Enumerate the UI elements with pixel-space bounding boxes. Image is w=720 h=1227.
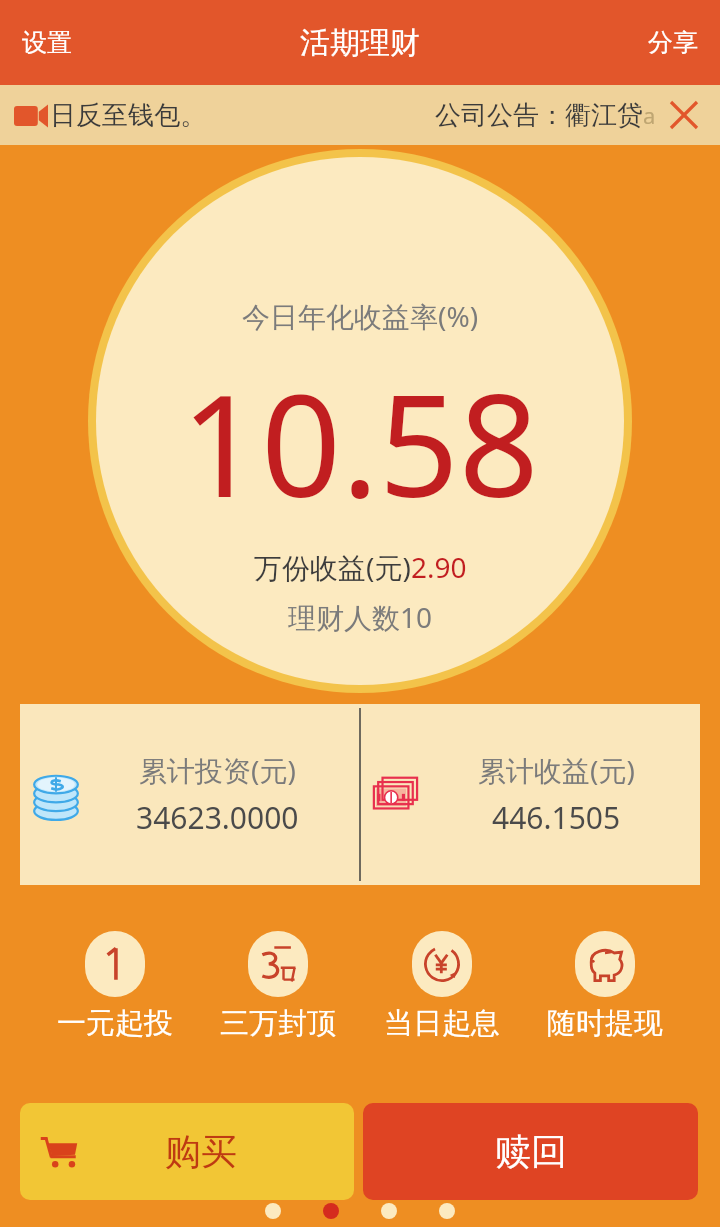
staticText: 累计收益(元) [478, 751, 635, 789]
button[interactable]: 购买 [20, 1103, 354, 1200]
staticText: 分享 [648, 27, 698, 58]
staticText: 公司公告：衢江贷 [435, 99, 643, 132]
staticText: 赎回 [495, 1129, 567, 1174]
button[interactable]: 累计投资(元) [20, 704, 359, 885]
button[interactable]: 当日起息 [380, 931, 504, 1042]
staticText: 理财人数10 [288, 598, 433, 636]
staticText: 2.90 [411, 548, 467, 586]
staticText: 活期理财 [300, 24, 420, 62]
button[interactable]: 赎回 [363, 1103, 698, 1200]
staticText: 累计投资(元) [139, 751, 296, 789]
button[interactable]: Page 2 [323, 1203, 339, 1219]
staticText: 当日起息 [384, 1005, 500, 1042]
button[interactable]: 分享 [626, 9, 720, 76]
button[interactable]: Close notice [656, 87, 712, 143]
staticText: 446.1505 [492, 797, 621, 838]
staticText: 设置 [22, 27, 72, 58]
staticText: 10.58 [181, 347, 539, 538]
staticText: 购买 [165, 1129, 237, 1174]
button[interactable]: Page 1 [265, 1203, 281, 1219]
button[interactable]: Page 4 [439, 1203, 455, 1219]
button[interactable]: 随时提现 [543, 931, 667, 1042]
staticText: 日反至钱包。 [50, 99, 206, 132]
staticText: 万份收益(元) [254, 548, 411, 586]
staticText: a [643, 100, 656, 130]
button[interactable]: Page 3 [381, 1203, 397, 1219]
staticText: 今日年化收益率(%) [242, 297, 479, 335]
button[interactable]: 三万封顶 [216, 931, 340, 1042]
button[interactable]: 累计收益(元) [361, 704, 700, 885]
staticText: 随时提现 [547, 1005, 663, 1042]
button[interactable]: 设置 [0, 9, 94, 76]
staticText: 34623.0000 [136, 797, 299, 838]
button[interactable]: 一元起投 [53, 931, 177, 1042]
staticText: 三万封顶 [220, 1005, 336, 1042]
staticText: 一元起投 [57, 1005, 173, 1042]
